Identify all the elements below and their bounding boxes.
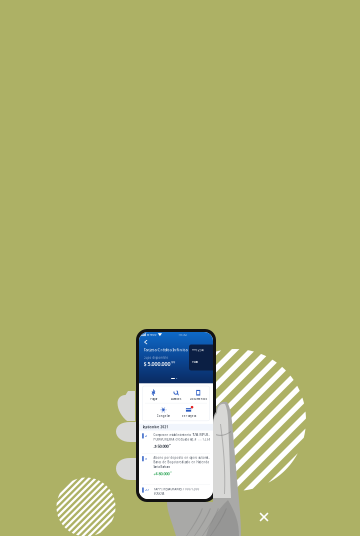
staticText: Ver tarjeta [182, 414, 196, 418]
staticText: Cupo disponible [143, 356, 168, 359]
button[interactable]: Ver tarjeta [178, 406, 199, 418]
button[interactable]: Back [139, 337, 151, 345]
staticText: Santa Barbara [153, 465, 169, 469]
staticText: 10:32 [178, 333, 187, 336]
staticText: 2 [145, 434, 147, 438]
staticText: 5 [145, 457, 147, 460]
staticText: POINT/CREDIRA efectuada TarJ.# - - 1234 [153, 438, 210, 441]
staticText: $ 5.000.000 [143, 360, 170, 367]
button[interactable]: Congelar [153, 406, 174, 418]
staticText: Servicio [147, 333, 157, 336]
staticText: +$ 80.000 [153, 471, 169, 476]
staticText: Documentos [190, 397, 207, 401]
staticText: Avances [171, 397, 181, 401]
staticText: ,00 [170, 361, 175, 364]
staticText: BOGOTÁ [153, 492, 164, 495]
staticText: -$ 50.000 [153, 444, 168, 449]
staticText: ,00 [169, 444, 171, 445]
button[interactable]: Pagar [142, 389, 165, 401]
staticText: Compra en establecimiento TUYA REPUBLIC [153, 433, 210, 437]
staticText: ,00 [170, 471, 172, 473]
staticText: Abono por deposito en cajero automatico [153, 456, 210, 459]
staticText: Tarjeta Crédito Infinita [143, 347, 187, 352]
button[interactable]: Close [254, 507, 274, 527]
staticText: 27 [145, 488, 149, 492]
button[interactable]: Documentos [187, 389, 209, 401]
staticText: RAPPI RESTAURANTES 7100/1200 [153, 487, 199, 491]
staticText: VISA [192, 360, 198, 363]
staticText: Congelar [157, 414, 170, 418]
staticText: Banco de Bogota realizado en Hacienda [153, 461, 208, 464]
staticText: Septiembre 2021 [142, 425, 168, 429]
staticText: Pagar [150, 397, 157, 401]
staticText: ••••1234 [192, 348, 204, 352]
button[interactable]: Avances [165, 389, 187, 401]
